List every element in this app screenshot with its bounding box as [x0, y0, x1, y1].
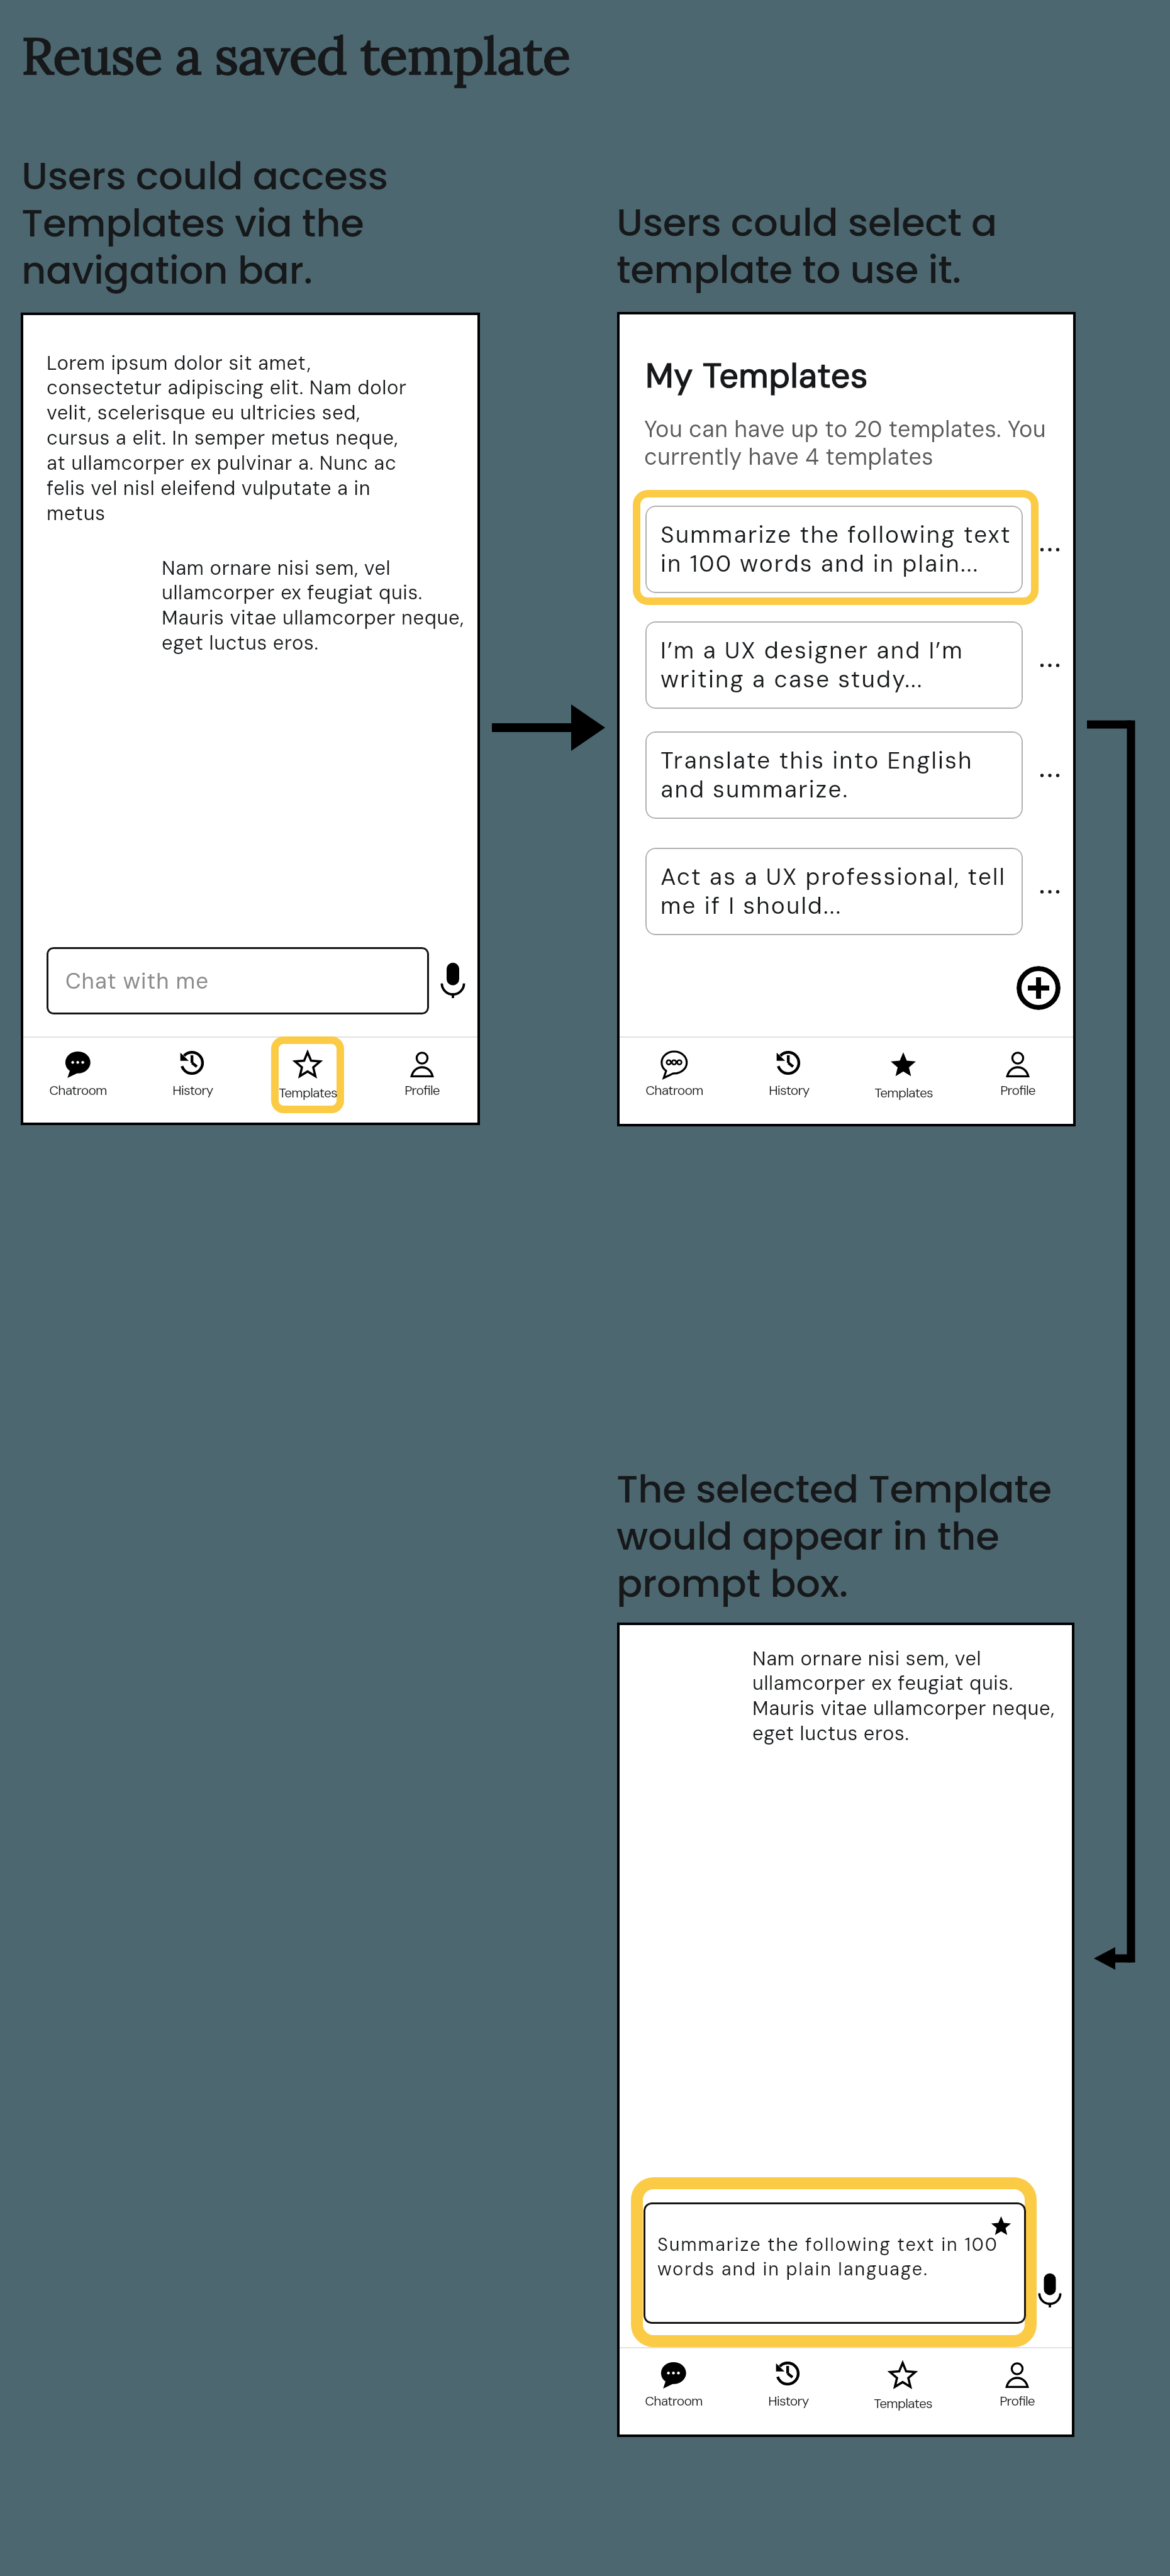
staticText: Profile — [1000, 2392, 1035, 2409]
button[interactable]: Chatroom — [40, 1046, 116, 1099]
staticText: My Templates — [645, 353, 868, 397]
button[interactable]: Templates — [270, 1046, 345, 1101]
button[interactable]: Profile — [980, 1046, 1056, 1099]
button[interactable]: Chatroom — [637, 1046, 712, 1099]
staticText: Translate this into English and summariz… — [660, 745, 973, 805]
staticText: Reuse a saved template — [21, 23, 571, 89]
staticText: Users could select a template to use it. — [616, 196, 998, 296]
staticText: You can have up to 20 templates. You cur… — [644, 414, 1046, 472]
button[interactable]: More options — [1031, 621, 1069, 709]
button[interactable]: History — [751, 1046, 827, 1099]
staticText: History — [172, 1082, 213, 1099]
button[interactable]: Voice input — [1038, 2272, 1062, 2307]
staticText: Chatroom — [645, 1082, 703, 1099]
button[interactable]: Chat with me — [47, 947, 429, 1014]
staticText: The selected Template would appear in th… — [616, 1462, 1052, 1610]
button[interactable]: Profile — [384, 1046, 460, 1099]
staticText: Templates — [279, 1084, 337, 1101]
staticText: Summarize the following text in 100 word… — [660, 519, 1011, 579]
button[interactable]: Profile — [979, 2357, 1055, 2409]
button[interactable]: Summarize the following text in 100 word… — [645, 506, 1023, 593]
staticText: Chat with me — [65, 967, 209, 996]
button[interactable]: Act as a UX professional, tell me if I s… — [645, 848, 1023, 935]
staticText: Lorem ipsum dolor sit amet, consectetur … — [47, 350, 407, 526]
staticText: Nam ornare nisi sem, vel ullamcorper ex … — [752, 1646, 1055, 1746]
button[interactable]: More options — [1031, 506, 1069, 593]
staticText: Profile — [1000, 1082, 1035, 1099]
staticText: Profile — [404, 1082, 440, 1099]
staticText: History — [769, 1082, 810, 1099]
button[interactable]: I’m a UX designer and I’m writing a case… — [645, 621, 1023, 709]
staticText: I’m a UX designer and I’m writing a case… — [660, 635, 964, 695]
button[interactable]: Chatroom — [636, 2357, 711, 2409]
button[interactable]: More options — [1031, 848, 1069, 935]
staticText: Summarize the following text in 100 word… — [657, 2233, 998, 2281]
button[interactable]: More options — [1031, 731, 1069, 819]
button[interactable]: Add template — [1017, 966, 1061, 1010]
staticText: Nam ornare nisi sem, vel ullamcorper ex … — [162, 555, 464, 656]
button[interactable]: History — [155, 1046, 230, 1099]
staticText: Act as a UX professional, tell me if I s… — [660, 862, 1006, 921]
staticText: Templates — [874, 1084, 933, 1101]
staticText: Templates — [874, 2395, 932, 2412]
staticText: History — [768, 2392, 809, 2409]
staticText: Users could access Templates via the nav… — [21, 149, 388, 297]
button[interactable]: Voice input — [440, 962, 465, 998]
button[interactable]: History — [750, 2357, 826, 2409]
button[interactable]: Translate this into English and summariz… — [645, 731, 1023, 819]
staticText: Chatroom — [645, 2392, 703, 2409]
button[interactable]: Templates — [865, 2357, 940, 2412]
button[interactable]: Summarize the following text in 100 word… — [643, 2202, 1026, 2324]
button[interactable]: Templates — [866, 1046, 941, 1101]
staticText: Chatroom — [49, 1082, 107, 1099]
